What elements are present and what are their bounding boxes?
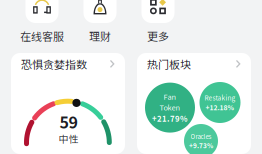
- button[interactable]: 热门板块: [137, 53, 251, 75]
- staticText: Oracles: [190, 132, 211, 141]
- staticText: 中性: [59, 131, 79, 146]
- staticText: 更多: [147, 28, 169, 44]
- staticText: 在线客服: [20, 28, 64, 44]
- staticText: Restaking: [204, 93, 235, 102]
- staticText: +9.73%: [189, 141, 213, 150]
- staticText: 59: [60, 110, 78, 133]
- button[interactable]: 恐惧贪婪指数: [11, 53, 125, 75]
- staticText: 理财: [89, 28, 111, 44]
- staticText: Fan: [163, 91, 176, 102]
- staticText: 热门板块: [147, 56, 191, 72]
- button[interactable]: 在线客服: [13, 0, 71, 44]
- button[interactable]: 理财: [71, 0, 129, 44]
- staticText: +21.79%: [152, 113, 188, 124]
- staticText: 恐惧贪婪指数: [21, 56, 87, 72]
- button[interactable]: 更多: [129, 0, 187, 44]
- staticText: Token: [159, 102, 180, 113]
- staticText: +12.18%: [205, 102, 234, 112]
